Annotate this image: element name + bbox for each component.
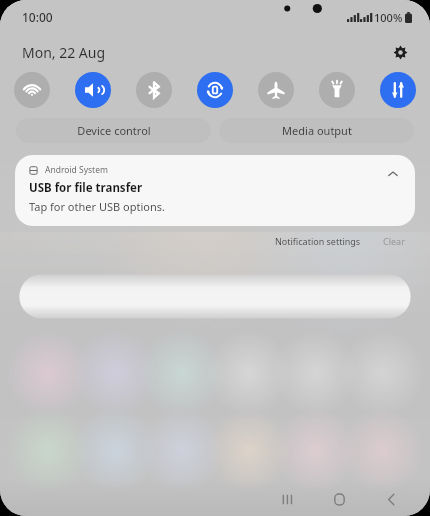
button[interactable]: Android System [15,155,415,226]
staticText: 10:00 [22,9,53,25]
staticText: Notification settings [275,235,361,247]
button[interactable]: Airplane mode [258,72,294,108]
staticText: Tap for other USB options. [29,199,165,214]
button[interactable]: Media output [219,118,414,143]
staticText: Android System [45,164,108,176]
button[interactable]: Device control [16,118,211,143]
button[interactable]: Flashlight [319,72,355,108]
button[interactable]: Wi-Fi [14,72,50,108]
staticText: Mon, 22 Aug [22,43,106,62]
staticText: Device control [77,123,151,138]
button[interactable]: Sound [75,72,111,108]
button[interactable]: Recent apps [268,482,306,516]
button[interactable]: Clear [378,232,410,250]
button[interactable]: Home [320,482,358,516]
button[interactable]: Back [372,482,410,516]
staticText: Media output [282,123,352,138]
button[interactable]: Collapse notification [383,164,403,184]
staticText: USB for file transfer [29,180,143,196]
button[interactable]: Mobile data [380,72,416,108]
staticText: Clear [383,235,405,247]
button[interactable]: Notification settings [270,232,366,250]
button[interactable]: Bluetooth [136,72,172,108]
button[interactable]: Settings [388,40,412,64]
staticText: 100% [374,10,403,25]
button[interactable]: Auto rotate [197,72,233,108]
